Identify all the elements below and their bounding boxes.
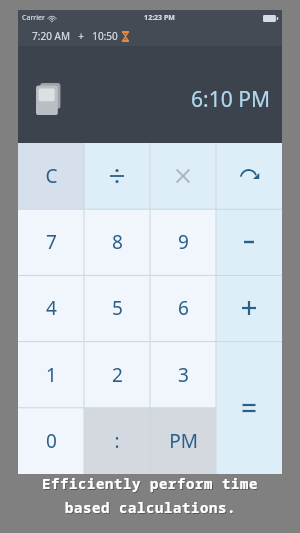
staticText: Efficiently perform time: [42, 474, 258, 493]
staticText: Efficiently perform time: [43, 475, 259, 494]
staticText: 3: [178, 362, 189, 388]
button[interactable]: 6: [150, 275, 216, 341]
button[interactable]: 0: [18, 408, 84, 474]
button[interactable]: :: [84, 408, 150, 474]
button[interactable]: 5: [84, 275, 150, 341]
staticText: 2: [112, 362, 123, 388]
button[interactable]: 7: [18, 209, 84, 275]
staticText: 4: [46, 295, 57, 321]
button[interactable]: Paste: [36, 83, 62, 115]
staticText: 7:20 AM: [32, 29, 70, 43]
staticText: based calculations.: [66, 499, 237, 518]
button[interactable]: 2: [84, 342, 150, 408]
staticText: 9: [178, 229, 189, 255]
staticText: 1: [46, 362, 57, 388]
staticText: 10:50: [92, 29, 118, 43]
staticText: C: [45, 163, 58, 189]
staticText: 0: [46, 428, 57, 454]
button[interactable]: [216, 342, 282, 474]
staticText: 6: [178, 295, 189, 321]
staticText: 8: [112, 229, 123, 255]
staticText: PM: [169, 428, 198, 454]
button[interactable]: [216, 209, 282, 275]
staticText: 6:10 PM: [191, 85, 270, 114]
staticText: 7: [46, 229, 57, 255]
staticText: :: [114, 428, 120, 454]
button[interactable]: 4: [18, 275, 84, 341]
staticText: 5: [112, 295, 123, 321]
button[interactable]: [84, 143, 150, 209]
button[interactable]: [150, 143, 216, 209]
staticText: based calculations.: [65, 498, 236, 517]
button[interactable]: 3: [150, 342, 216, 408]
staticText: Carrier: [22, 13, 45, 23]
button[interactable]: PM: [150, 408, 216, 474]
button[interactable]: 8: [84, 209, 150, 275]
button[interactable]: [216, 275, 282, 341]
button[interactable]: 1: [18, 342, 84, 408]
staticText: 12:23 PM: [144, 13, 175, 23]
button[interactable]: C: [18, 143, 84, 209]
staticText: +: [78, 29, 84, 43]
button[interactable]: 9: [150, 209, 216, 275]
button[interactable]: Redo: [216, 143, 282, 209]
